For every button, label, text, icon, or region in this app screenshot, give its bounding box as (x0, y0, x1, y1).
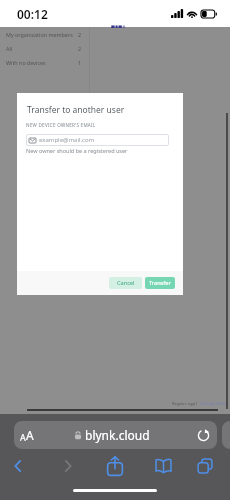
button[interactable]: A (14, 421, 217, 449)
button[interactable]: With no devices (0, 55, 89, 69)
staticText: All (6, 45, 13, 52)
button[interactable]: Transfer (145, 277, 175, 289)
button[interactable]: Tabs (192, 453, 217, 478)
button[interactable]: All (0, 41, 89, 55)
button[interactable]: Share (102, 453, 127, 478)
button[interactable]: Reload (196, 428, 211, 443)
staticText: Transfer (149, 279, 171, 287)
staticText: 2 (78, 45, 82, 52)
button[interactable]: Cancel (109, 277, 142, 289)
staticText: A (26, 427, 34, 443)
staticText: My organization members (6, 31, 73, 38)
staticText: 00:12 (17, 6, 48, 22)
staticText: Region: sgp1 (172, 401, 198, 407)
staticText: 2 (78, 31, 82, 38)
staticText: Privacy Policy (201, 401, 228, 407)
staticText: NEW DEVICE OWNER'S EMAIL (26, 122, 96, 128)
button[interactable]: Back (5, 453, 30, 478)
staticText: blynk.cloud (85, 427, 150, 443)
staticText: Cancel (117, 279, 135, 287)
staticText: 1 (78, 59, 82, 66)
button[interactable]: Bookmarks (151, 453, 176, 478)
button[interactable]: My organization members (0, 27, 89, 41)
staticText: With no devices (6, 59, 46, 66)
staticText: Transfer to another user (27, 104, 125, 116)
staticText: A (20, 431, 26, 443)
button[interactable]: Forward (55, 453, 80, 478)
staticText: New owner should be a registered user (26, 147, 128, 154)
button[interactable]: example@mail.com (26, 134, 169, 146)
staticText: example@mail.com (39, 136, 95, 144)
